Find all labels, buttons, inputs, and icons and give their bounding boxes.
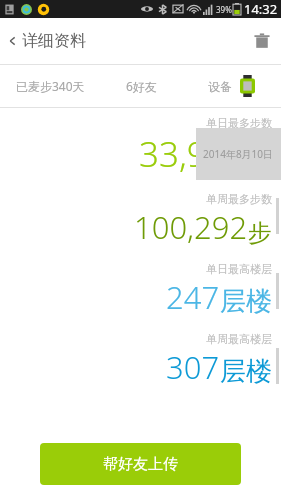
staticText: 6好友: [126, 78, 157, 94]
staticText: 14:32: [244, 0, 278, 18]
staticText: 100,292: [134, 206, 248, 248]
staticText: 单日最多步数: [206, 116, 272, 130]
button[interactable]: Delete: [253, 18, 271, 64]
staticText: 单周最高楼层: [206, 332, 272, 346]
button[interactable]: 已麦步340天: [0, 65, 101, 107]
staticText: 247: [166, 276, 220, 318]
button[interactable]: 2014年8月10日: [196, 128, 281, 180]
staticText: 单日最高楼层: [206, 262, 272, 276]
staticText: 已麦步340天: [16, 78, 85, 94]
staticText: 步: [247, 147, 272, 178]
button[interactable]: 设备: [181, 65, 281, 107]
button[interactable]: 单周最多步数: [0, 192, 272, 248]
staticText: 步: [248, 218, 272, 248]
button[interactable]: 单日最高楼层: [0, 262, 272, 318]
staticText: 层楼: [220, 355, 272, 388]
staticText: 2014年8月10日: [203, 147, 274, 161]
staticText: 307: [166, 346, 220, 388]
button[interactable]: 帮好友上传: [40, 443, 241, 485]
staticText: 层楼: [220, 285, 272, 318]
staticText: 帮好友上传: [103, 455, 178, 474]
staticText: 设备: [208, 79, 232, 94]
button[interactable]: 单周最高楼层: [0, 332, 272, 388]
staticText: 33,981: [139, 130, 247, 178]
button[interactable]: 单日最多步数: [0, 116, 272, 178]
button[interactable]: Back: [6, 18, 86, 64]
staticText: 39%: [216, 4, 232, 15]
staticText: 单周最多步数: [206, 192, 272, 206]
button[interactable]: 6好友: [101, 65, 181, 107]
other: Back: [6, 34, 20, 48]
staticText: 详细资料: [22, 31, 86, 51]
